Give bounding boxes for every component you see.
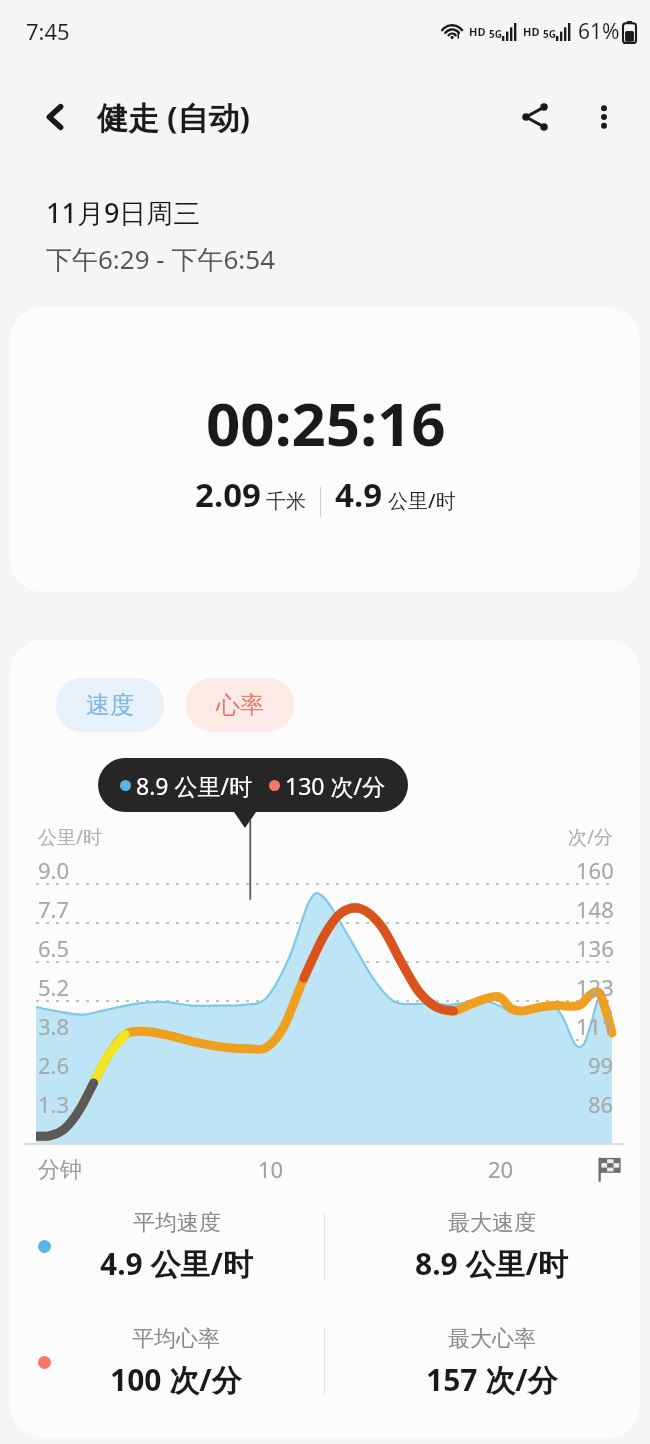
staticText: 00:25:16: [206, 382, 446, 464]
staticText: 速度: [86, 690, 134, 720]
staticText: 7:45: [26, 16, 70, 46]
staticText: 平均速度: [133, 1209, 221, 1237]
staticText: 次/分: [568, 824, 614, 850]
button[interactable]: Back: [28, 89, 84, 145]
staticText: 千米: [266, 489, 306, 514]
staticText: 7.7: [38, 894, 70, 924]
staticText: 20: [488, 1154, 514, 1184]
staticText: 5G: [543, 27, 556, 41]
staticText: 148: [576, 894, 614, 924]
staticText: 6.5: [38, 933, 70, 963]
staticText: 健走 (自动): [97, 96, 251, 138]
staticText: 最大心率: [448, 1325, 536, 1353]
staticText: 2.6: [38, 1050, 70, 1080]
staticText: 100 次/分: [110, 1359, 242, 1400]
button[interactable]: 平均速度: [10, 1200, 324, 1292]
staticText: 136: [576, 933, 614, 963]
staticText: 10: [258, 1154, 284, 1184]
staticText: HD: [469, 24, 486, 39]
staticText: 最大速度: [448, 1209, 536, 1237]
staticText: 5G: [489, 27, 502, 41]
button[interactable]: Share: [504, 86, 566, 148]
staticText: 3.8: [38, 1011, 70, 1041]
staticText: 2.09: [195, 472, 261, 517]
staticText: 8.9 公里/时: [136, 770, 253, 801]
staticText: HD: [523, 24, 540, 39]
staticText: 111: [576, 1011, 614, 1041]
staticText: 123: [576, 972, 614, 1002]
staticText: 99: [588, 1050, 614, 1080]
staticText: 下午6:29 - 下午6:54: [46, 241, 276, 277]
button[interactable]: 00:25:16: [10, 307, 640, 592]
staticText: 1.3: [38, 1089, 70, 1119]
button[interactable]: 最大速度: [325, 1200, 640, 1292]
staticText: 61%: [578, 17, 620, 46]
button[interactable]: 心率: [186, 678, 294, 732]
staticText: 130 次/分: [285, 770, 386, 801]
button[interactable]: 最大心率: [325, 1316, 640, 1408]
button[interactable]: 速度: [56, 678, 164, 732]
staticText: 分钟: [38, 1156, 82, 1184]
staticText: 4.9: [335, 472, 383, 517]
staticText: 平均心率: [132, 1325, 220, 1353]
button[interactable]: More options: [576, 89, 632, 145]
staticText: 公里/时: [388, 487, 456, 514]
staticText: 157 次/分: [426, 1359, 558, 1400]
staticText: 公里/时: [38, 824, 103, 850]
staticText: 4.9 公里/时: [100, 1243, 253, 1284]
staticText: 11月9日周三: [46, 194, 201, 231]
staticText: 8.9 公里/时: [415, 1243, 568, 1284]
staticText: 86: [588, 1089, 614, 1119]
button[interactable]: 平均心率: [10, 1316, 324, 1408]
staticText: 心率: [216, 690, 264, 720]
staticText: 5.2: [38, 972, 70, 1002]
staticText: 160: [576, 855, 614, 885]
staticText: 9.0: [38, 855, 70, 885]
